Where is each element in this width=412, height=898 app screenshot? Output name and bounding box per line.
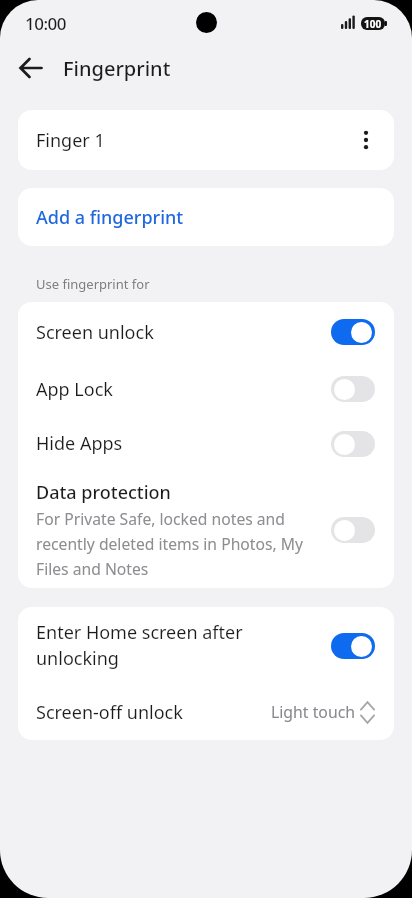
- staticText: Light touch: [271, 701, 356, 723]
- staticText: Hide Apps: [36, 431, 123, 456]
- staticText: Use fingerprint for: [36, 275, 150, 293]
- button[interactable]: Screen unlock: [18, 302, 394, 362]
- staticText: Data protection: [36, 480, 171, 505]
- button[interactable]: Finger 1: [18, 110, 394, 170]
- staticText: Enter Home screen after unlocking: [36, 620, 331, 671]
- button[interactable]: Data protection: [18, 471, 394, 588]
- staticText: 100: [364, 17, 382, 30]
- button[interactable]: Hide Apps: [18, 416, 394, 471]
- button[interactable]: [331, 319, 375, 345]
- staticText: Finger 1: [36, 128, 105, 153]
- staticText: Fingerprint: [63, 55, 171, 82]
- button[interactable]: App Lock: [18, 362, 394, 416]
- button[interactable]: [331, 376, 375, 402]
- button[interactable]: [357, 131, 375, 149]
- staticText: App Lock: [36, 377, 113, 402]
- button[interactable]: [331, 517, 375, 543]
- button[interactable]: Screen-off unlock: [18, 684, 394, 740]
- staticText: For Private Safe, locked notes and recen…: [36, 508, 304, 579]
- button[interactable]: Enter Home screen after unlocking: [18, 607, 394, 684]
- staticText: Add a fingerprint: [36, 205, 184, 230]
- staticText: 10:00: [25, 12, 67, 35]
- button[interactable]: [331, 431, 375, 457]
- button[interactable]: [331, 633, 375, 659]
- staticText: Screen unlock: [36, 320, 154, 345]
- button[interactable]: Add a fingerprint: [18, 188, 394, 246]
- staticText: Screen-off unlock: [36, 700, 183, 725]
- button[interactable]: [19, 56, 43, 80]
